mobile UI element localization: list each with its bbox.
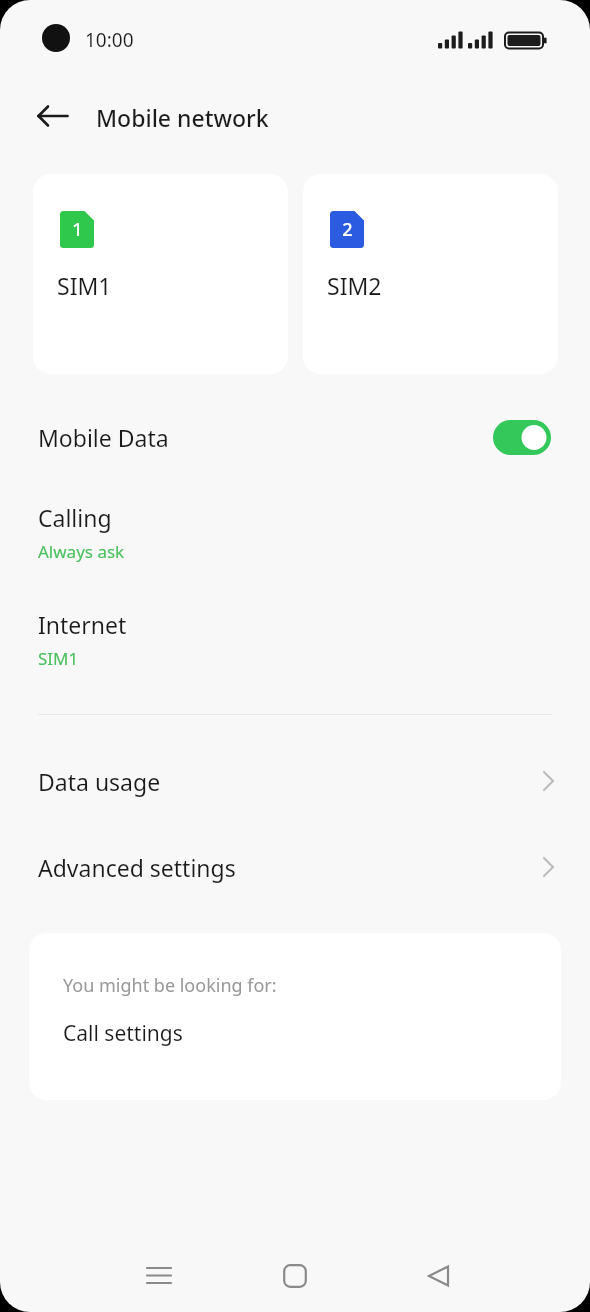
staticText: Data usage bbox=[38, 766, 161, 797]
button[interactable]: Mobile Data toggle bbox=[493, 420, 551, 455]
staticText: Calling bbox=[38, 502, 112, 533]
staticText: 10:00 bbox=[85, 27, 134, 53]
staticText: 1 bbox=[72, 217, 83, 242]
staticText: Mobile Data bbox=[38, 422, 169, 453]
button[interactable]: Advanced settings bbox=[24, 838, 566, 896]
staticText: Internet bbox=[38, 609, 127, 640]
button[interactable]: Home bbox=[264, 1245, 326, 1307]
staticText: SIM1 bbox=[38, 647, 79, 670]
staticText: Always ask bbox=[38, 540, 125, 563]
button[interactable]: 1 bbox=[33, 174, 288, 374]
staticText: 2 bbox=[342, 217, 353, 242]
staticText: You might be looking for: bbox=[63, 973, 277, 998]
staticText: Advanced settings bbox=[38, 852, 236, 883]
button[interactable]: Data usage bbox=[24, 752, 566, 810]
staticText: Call settings bbox=[63, 1019, 183, 1048]
button[interactable]: Internet bbox=[24, 603, 566, 678]
staticText: SIM1 bbox=[57, 270, 112, 301]
button[interactable]: Call settings bbox=[29, 1002, 561, 1064]
button[interactable]: Back bbox=[26, 92, 80, 140]
staticText: SIM2 bbox=[327, 270, 382, 301]
button[interactable]: Calling bbox=[24, 496, 566, 571]
button[interactable]: Mobile Data bbox=[24, 408, 566, 466]
button[interactable]: Back bbox=[408, 1245, 470, 1307]
button[interactable]: Recents bbox=[128, 1245, 190, 1307]
button[interactable]: 2 bbox=[303, 174, 558, 374]
staticText: Mobile network bbox=[96, 102, 269, 133]
